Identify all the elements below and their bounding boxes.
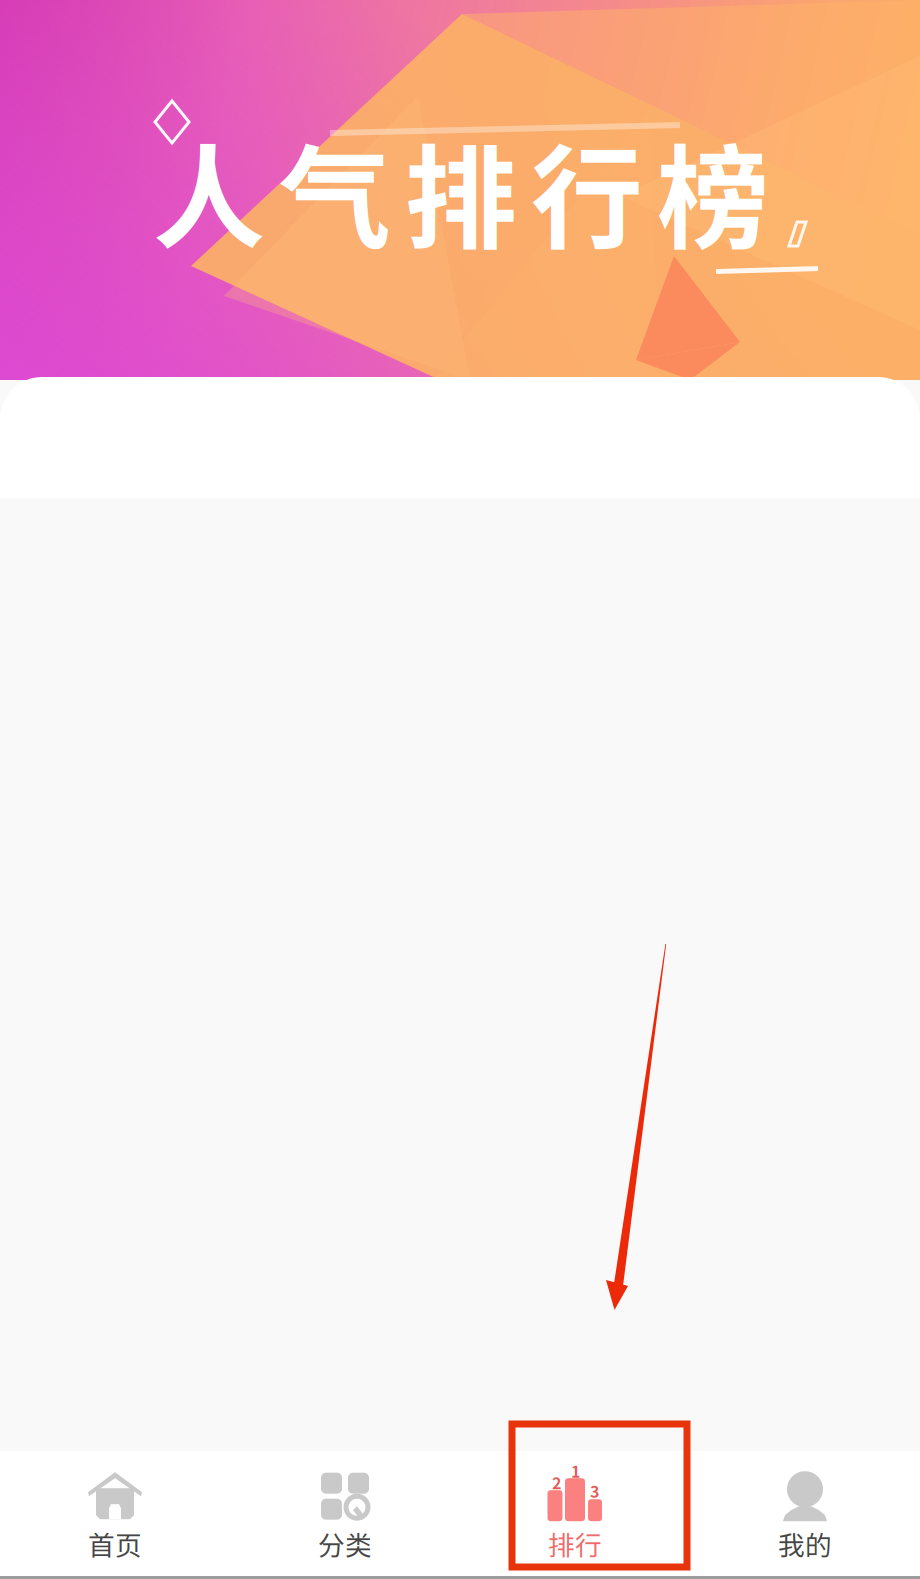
staticText: 排行 [548,1524,602,1563]
staticText: 人气排行榜 [153,110,769,272]
button[interactable]: 首页 [0,1445,230,1579]
staticText: 1 [571,1459,580,1482]
staticText: 3 [590,1479,599,1502]
button[interactable]: 分类 [230,1445,460,1579]
staticText: 首页 [88,1524,142,1563]
button[interactable]: 我的 [690,1445,920,1579]
staticText: 2 [552,1471,561,1494]
staticText: 我的 [778,1524,832,1563]
staticText: 分类 [318,1524,372,1563]
button[interactable]: 2 [460,1445,690,1579]
